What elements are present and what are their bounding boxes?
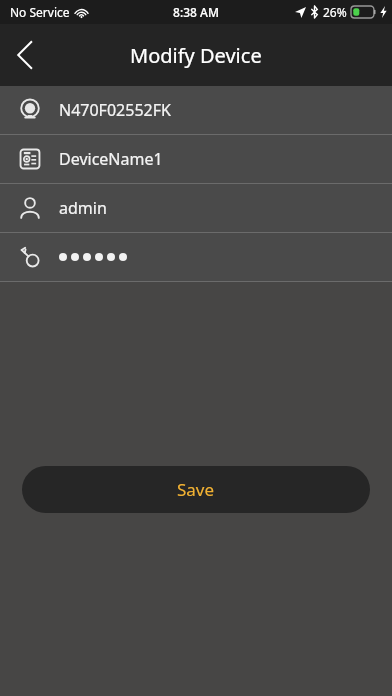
- staticText: N470F02552FK: [59, 99, 171, 121]
- staticText: 26%: [323, 4, 347, 20]
- staticText: Save: [177, 478, 215, 501]
- staticText: Modify Device: [130, 42, 262, 69]
- button[interactable]: N470F02552FK: [0, 86, 392, 134]
- button[interactable]: DeviceName1: [0, 135, 392, 183]
- button[interactable]: [0, 233, 392, 281]
- staticText: DeviceName1: [59, 148, 163, 170]
- button[interactable]: Back: [0, 31, 48, 79]
- button[interactable]: admin: [0, 184, 392, 232]
- staticText: No Service: [10, 4, 70, 20]
- staticText: 8:38 AM: [173, 4, 219, 20]
- staticText: admin: [59, 197, 107, 219]
- button[interactable]: Save: [22, 466, 370, 513]
